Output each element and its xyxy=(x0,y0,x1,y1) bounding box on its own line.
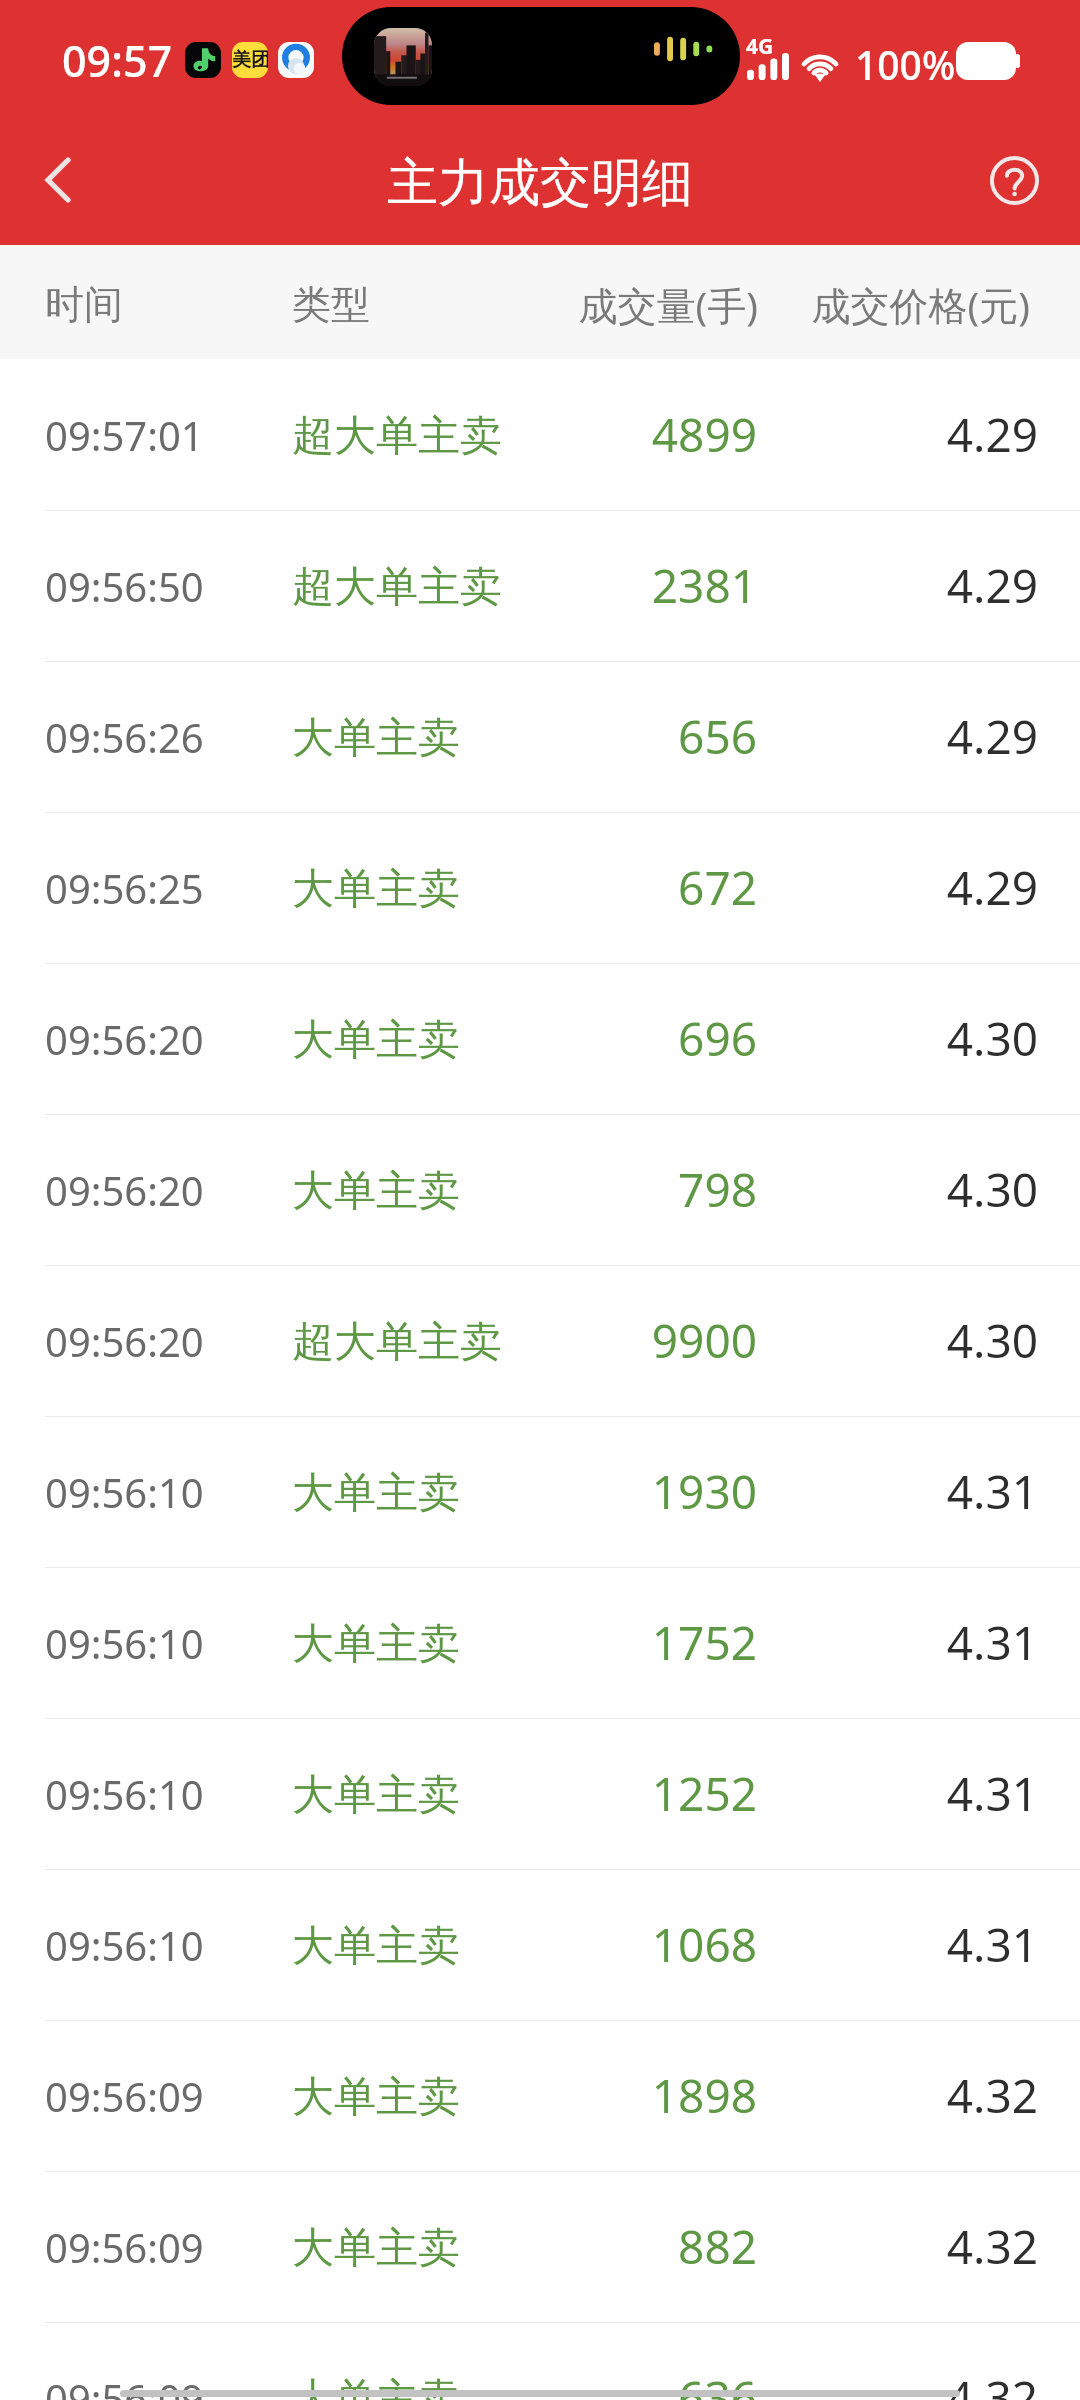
staticText: 大单主卖 xyxy=(292,2373,460,2400)
staticText: 882 xyxy=(516,2215,757,2278)
staticText: 09:56:10 xyxy=(45,1465,204,1519)
staticText: 09:56:09 xyxy=(45,2220,204,2274)
staticText: 美团 xyxy=(232,48,268,72)
staticText: 09:56:20 xyxy=(45,1314,204,1368)
staticText: 1252 xyxy=(516,1762,757,1825)
button[interactable]: 09:56:10 xyxy=(0,1416,1080,1568)
staticText: 09:57:01 xyxy=(45,408,204,462)
button[interactable]: 09:56:20 xyxy=(0,1265,1080,1417)
staticText: 4.29 xyxy=(797,554,1038,617)
staticText: 09:56:26 xyxy=(45,710,204,764)
button[interactable]: 09:56:09 xyxy=(0,2322,1080,2400)
staticText: 09:56:20 xyxy=(45,1163,204,1217)
staticText: 大单主卖 xyxy=(292,1618,460,1671)
staticText: 09:56:09 xyxy=(45,2371,204,2400)
button[interactable]: 09:56:26 xyxy=(0,661,1080,813)
staticText: 4.29 xyxy=(797,403,1038,466)
staticText: 4.31 xyxy=(797,1611,1038,1674)
staticText: 超大单主卖 xyxy=(292,1316,502,1369)
staticText: 主力成交明细 xyxy=(387,151,693,215)
button[interactable]: 09:56:09 xyxy=(0,2020,1080,2172)
staticText: 798 xyxy=(516,1158,757,1221)
staticText: 4G xyxy=(746,32,774,61)
staticText: 656 xyxy=(516,705,757,768)
staticText: 大单主卖 xyxy=(292,1467,460,1520)
staticText: 超大单主卖 xyxy=(292,410,502,463)
staticText: 大单主卖 xyxy=(292,2222,460,2275)
staticText: 1898 xyxy=(516,2064,757,2127)
staticText: 4.32 xyxy=(797,2366,1038,2400)
staticText: 大单主卖 xyxy=(292,2071,460,2124)
staticText: 大单主卖 xyxy=(292,1014,460,1067)
staticText: 4.31 xyxy=(797,1913,1038,1976)
staticText: 1930 xyxy=(516,1460,757,1523)
staticText: 4.31 xyxy=(797,1460,1038,1523)
staticText: 4.30 xyxy=(797,1309,1038,1372)
button[interactable]: 09:56:50 xyxy=(0,510,1080,662)
staticText: 超大单主卖 xyxy=(292,561,502,614)
staticText: 4899 xyxy=(516,403,757,466)
staticText: 大单主卖 xyxy=(292,1165,460,1218)
button[interactable]: Back xyxy=(0,120,118,245)
staticText: 类型 xyxy=(292,280,370,329)
button[interactable]: 09:56:10 xyxy=(0,1869,1080,2021)
staticText: 09:56:25 xyxy=(45,861,204,915)
staticText: 4.30 xyxy=(797,1007,1038,1070)
staticText: 4.29 xyxy=(797,705,1038,768)
button[interactable]: 09:56:10 xyxy=(0,1567,1080,1719)
staticText: 09:56:10 xyxy=(45,1616,204,1670)
button[interactable]: Help xyxy=(962,120,1080,245)
staticText: 大单主卖 xyxy=(292,863,460,916)
button[interactable]: 09:56:25 xyxy=(0,812,1080,964)
button[interactable]: 09:56:10 xyxy=(0,1718,1080,1870)
staticText: 09:56:10 xyxy=(45,1918,204,1972)
staticText: 696 xyxy=(516,1007,757,1070)
button[interactable]: 09:56:09 xyxy=(0,2171,1080,2323)
staticText: 09:56:10 xyxy=(45,1767,204,1821)
staticText: 100% xyxy=(855,38,956,91)
staticText: 1752 xyxy=(516,1611,757,1674)
staticText: 大单主卖 xyxy=(292,1769,460,1822)
staticText: 4.31 xyxy=(797,1762,1038,1825)
button[interactable]: 09:56:20 xyxy=(0,963,1080,1115)
staticText: 09:56:20 xyxy=(45,1012,204,1066)
staticText: 09:56:50 xyxy=(45,559,204,613)
staticText: 1068 xyxy=(516,1913,757,1976)
staticText: 成交量(手) xyxy=(520,278,758,331)
staticText: 大单主卖 xyxy=(292,1920,460,1973)
staticText: 672 xyxy=(516,856,757,919)
staticText: 636 xyxy=(516,2366,757,2400)
staticText: 2381 xyxy=(516,554,757,617)
staticText: 大单主卖 xyxy=(292,712,460,765)
staticText: 4.30 xyxy=(797,1158,1038,1221)
staticText: 4.32 xyxy=(797,2215,1038,2278)
staticText: 09:57 xyxy=(62,31,173,90)
staticText: 09:56:09 xyxy=(45,2069,204,2123)
staticText: 4.32 xyxy=(797,2064,1038,2127)
button[interactable]: 09:56:20 xyxy=(0,1114,1080,1266)
staticText: 成交价格(元) xyxy=(795,278,1030,331)
button[interactable]: 09:57:01 xyxy=(0,359,1080,511)
staticText: 4.29 xyxy=(797,856,1038,919)
staticText: 9900 xyxy=(516,1309,757,1372)
staticText: 时间 xyxy=(45,280,123,329)
